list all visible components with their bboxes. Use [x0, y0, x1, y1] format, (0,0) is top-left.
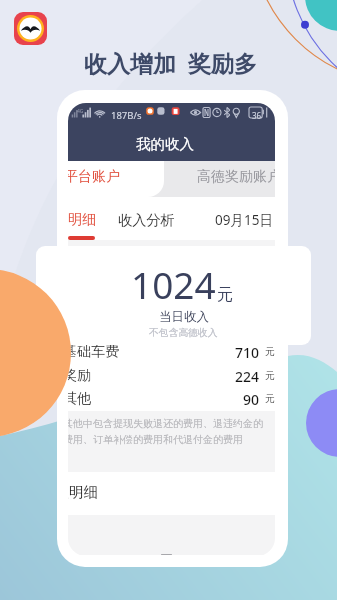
staticText: 收入明细	[68, 483, 98, 501]
button[interactable]: App icon	[14, 12, 47, 45]
staticText: 187B/s	[111, 109, 142, 122]
staticText: 收入增加 奖励多	[84, 47, 257, 78]
button[interactable]: 高德奖励账户	[197, 168, 275, 186]
button[interactable]: 收入分析	[118, 211, 175, 229]
staticText: 高德奖励账户	[197, 168, 275, 186]
button[interactable]: 收入明细	[68, 472, 275, 515]
staticText: 奖励	[68, 367, 91, 385]
staticText: 平台账户	[68, 168, 120, 186]
staticText: 不包含高德收入	[149, 327, 218, 339]
staticText: 当日收入	[159, 309, 209, 325]
staticText: 基础车费	[68, 343, 119, 361]
staticText: 224	[235, 367, 260, 386]
staticText: 710	[235, 343, 260, 362]
button[interactable]: 09月15日	[215, 211, 273, 229]
staticText: 我的收入	[136, 135, 194, 153]
staticText: 其他中包含提现失败退还的费用、退违约金的费用、订单补偿的费用和代退付金的费用	[68, 417, 270, 446]
staticText: 元	[265, 345, 275, 358]
staticText: 元	[265, 369, 275, 382]
staticText: 元	[265, 392, 275, 405]
staticText: 明细	[68, 211, 96, 229]
button[interactable]: 平台账户	[68, 161, 164, 197]
staticText: 90	[243, 390, 260, 409]
staticText: 36	[252, 110, 262, 121]
button[interactable]: 明细	[68, 207, 98, 240]
staticText: 元	[217, 285, 233, 305]
staticText: 其他	[68, 390, 91, 408]
staticText: 4G	[77, 108, 84, 115]
staticText: 1024	[131, 259, 216, 309]
